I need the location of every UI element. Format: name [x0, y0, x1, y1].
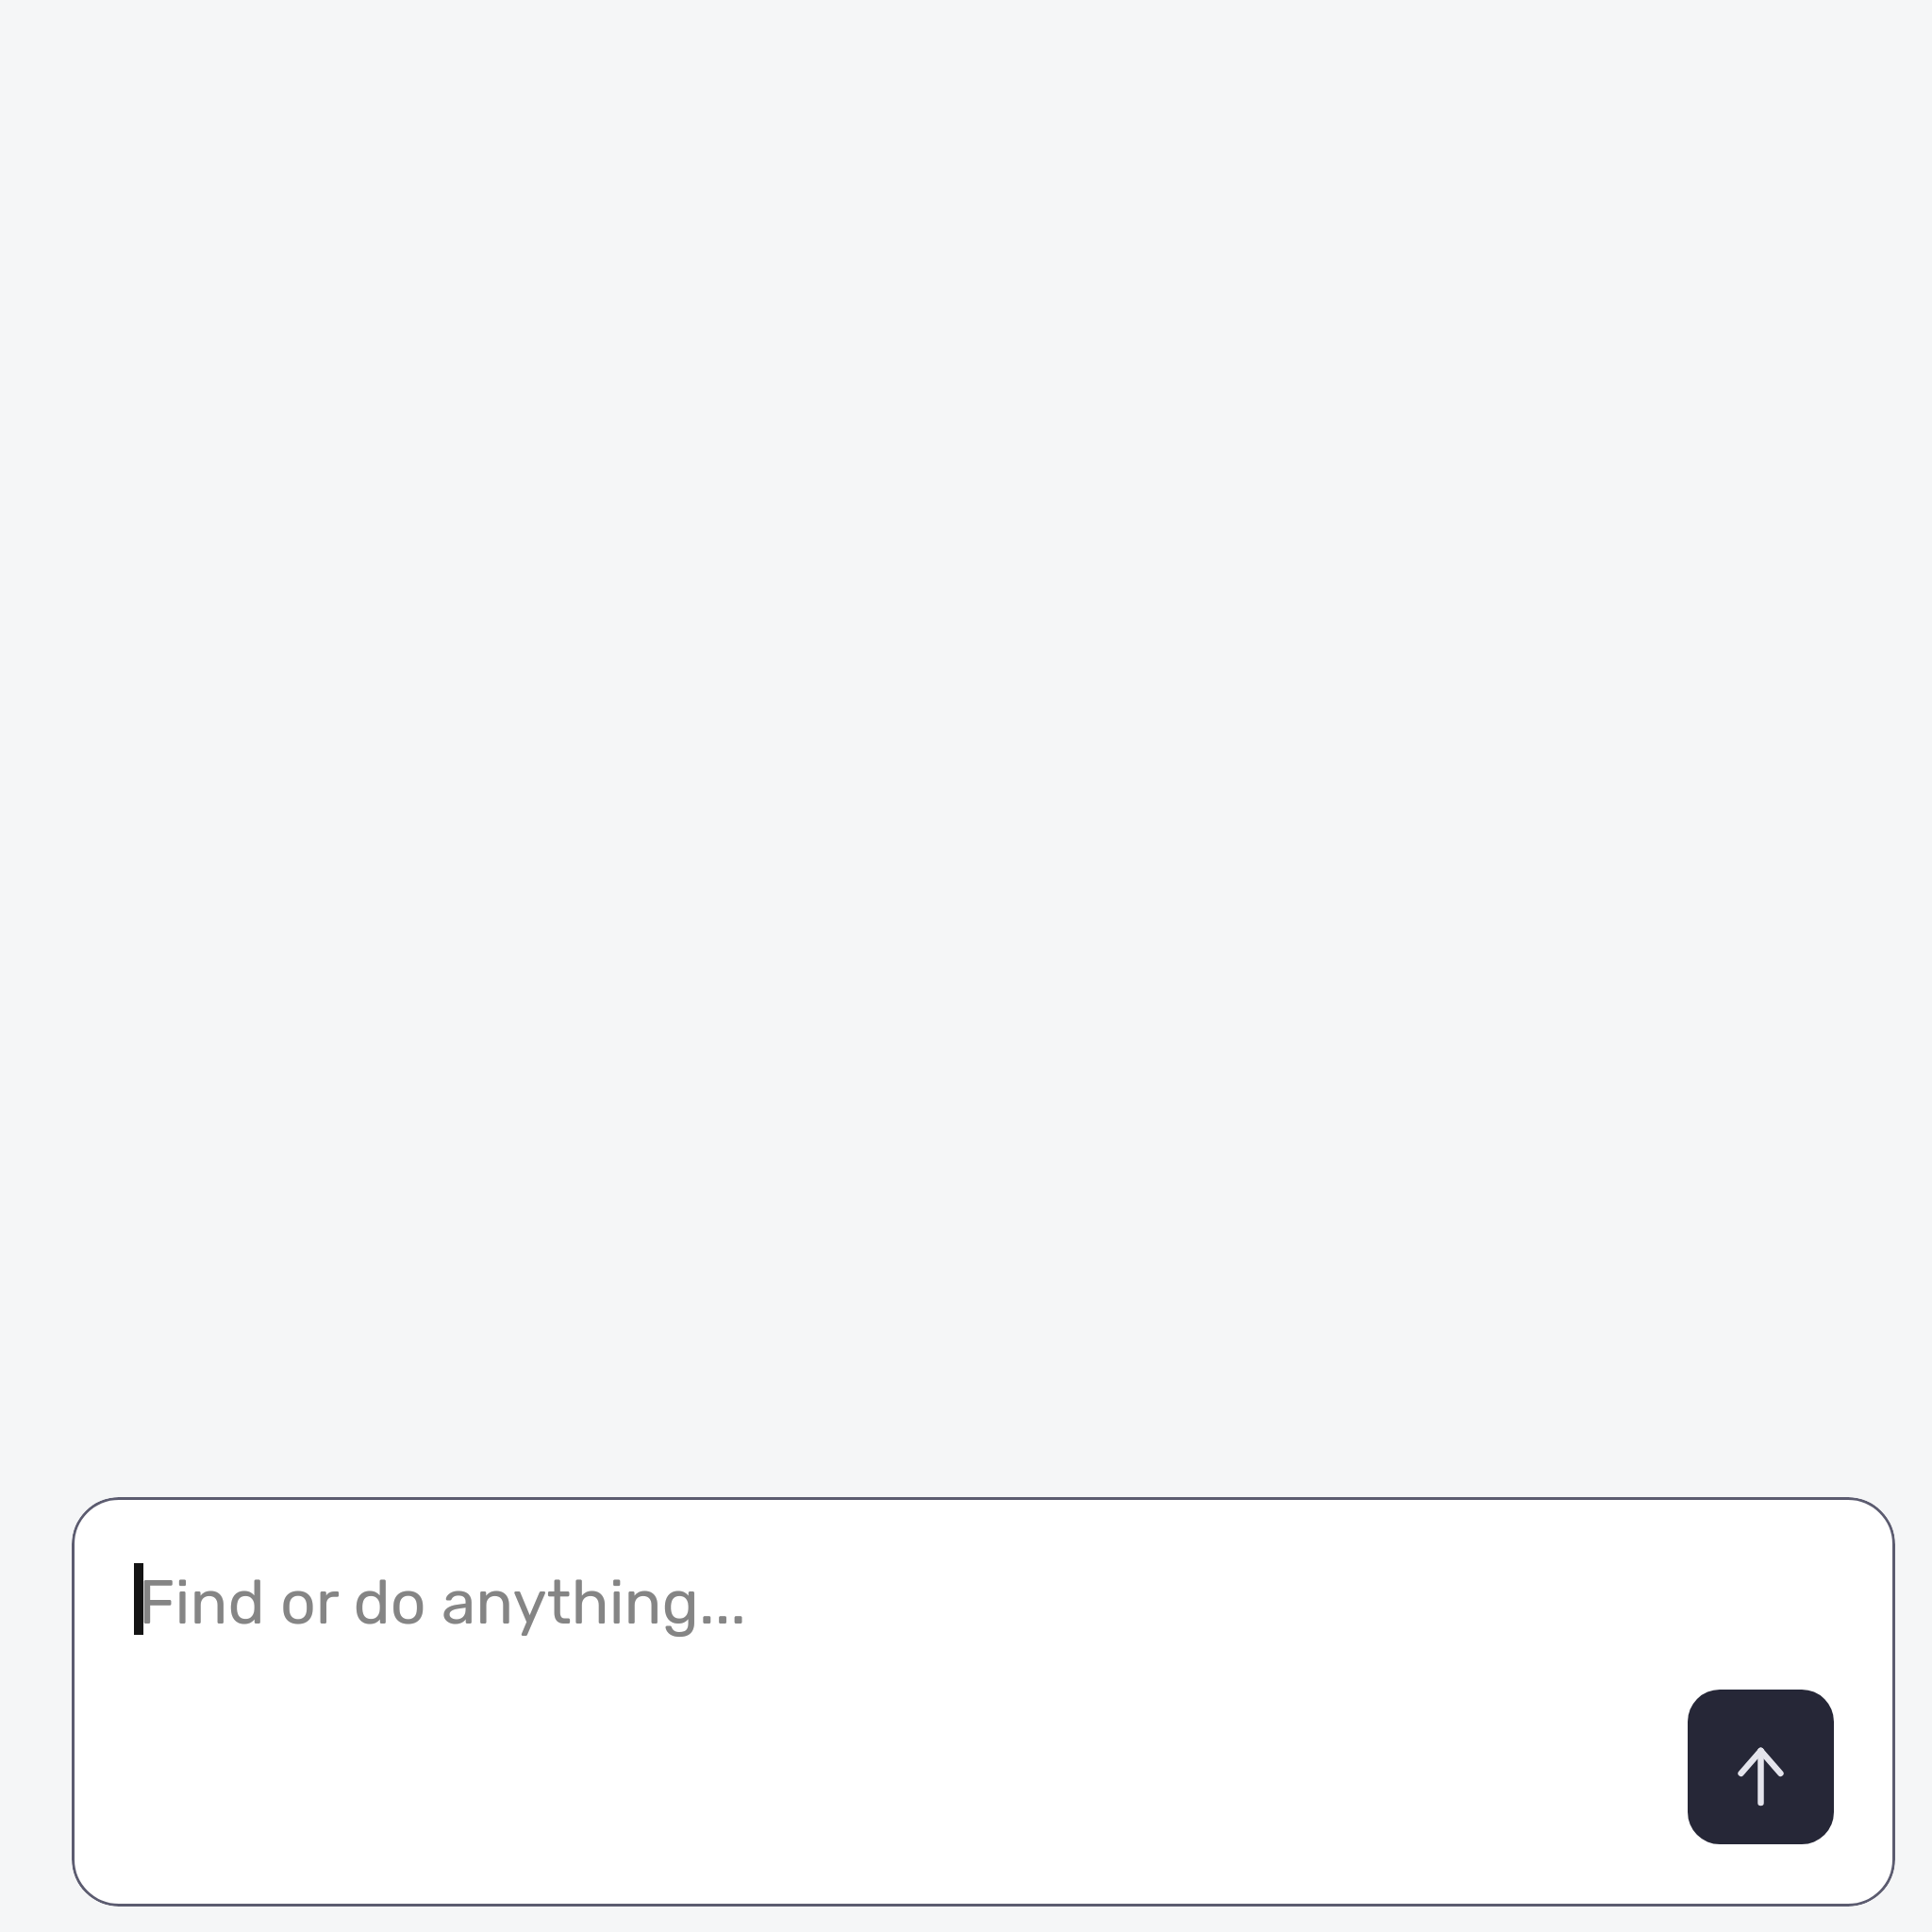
staticText: Find or do anything... [139, 1565, 746, 1639]
button[interactable]: Find or do anything... [72, 1497, 1895, 1907]
button[interactable]: Send [1688, 1690, 1834, 1844]
